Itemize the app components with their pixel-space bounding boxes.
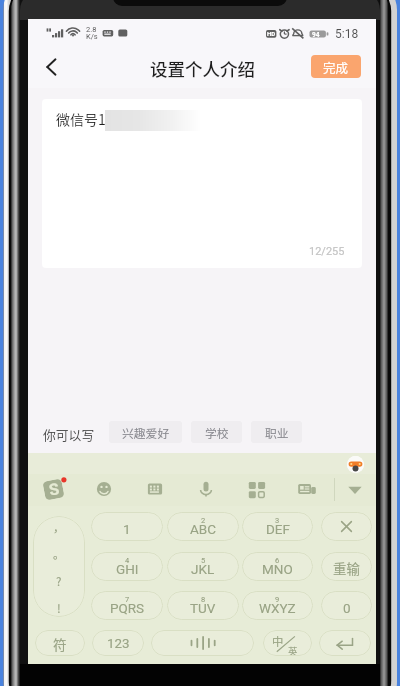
button[interactable]: Emoji — [347, 456, 364, 473]
staticText: DEF — [266, 521, 290, 537]
staticText: ? — [56, 573, 62, 590]
staticText: 学校 — [205, 424, 229, 441]
button[interactable]: 1 — [91, 512, 163, 541]
button[interactable]: Hide keyboard — [341, 475, 369, 503]
button[interactable]: 微信号1 — [42, 99, 362, 268]
staticText: 6 — [275, 556, 280, 565]
staticText: 9 — [275, 595, 280, 604]
button[interactable]: 5 — [167, 552, 239, 581]
staticText: 12/255 — [309, 245, 345, 258]
staticText: 5 — [201, 556, 206, 565]
button[interactable]: 兴趣爱好 — [109, 421, 182, 443]
staticText: 3 — [275, 516, 280, 525]
button[interactable]: 7 — [91, 591, 163, 620]
button[interactable]: Voice input — [151, 630, 254, 656]
staticText: 7 — [125, 595, 130, 604]
staticText: GHI — [116, 561, 139, 577]
button[interactable]: Back — [33, 48, 71, 86]
button[interactable]: Enter — [319, 630, 371, 656]
staticText: 。 — [53, 546, 65, 563]
staticText: K/s — [86, 32, 98, 41]
staticText: WXYZ — [259, 600, 296, 616]
button[interactable]: Clipboard — [293, 475, 321, 503]
staticText: 微信号1 — [56, 109, 106, 129]
staticText: 符 — [53, 634, 67, 654]
button[interactable]: Delete — [321, 512, 372, 541]
button[interactable]: 3 — [242, 512, 313, 541]
staticText: JKL — [191, 561, 215, 577]
button[interactable]: Punctuation — [33, 516, 85, 617]
staticText: 5:18 — [335, 27, 359, 41]
button[interactable]: 6 — [242, 552, 313, 581]
button[interactable]: Emoticons — [90, 475, 118, 503]
staticText: 8 — [201, 595, 206, 604]
button[interactable]: Input method settings — [39, 475, 67, 503]
staticText: PQRS — [110, 600, 145, 616]
button[interactable]: 重输 — [321, 552, 372, 581]
button[interactable]: Chinese English toggle — [263, 630, 312, 656]
staticText: 中 — [272, 633, 284, 650]
staticText: 完成 — [323, 58, 349, 76]
staticText: 4 — [125, 556, 130, 565]
button[interactable]: 完成 — [311, 55, 361, 78]
button[interactable]: 4 — [91, 552, 163, 581]
staticText: 英 — [288, 644, 298, 656]
button[interactable]: Keyboard layout — [141, 475, 169, 503]
button[interactable]: 9 — [242, 591, 313, 620]
button[interactable]: 123 — [92, 630, 144, 656]
staticText: MNO — [262, 561, 293, 577]
staticText: ， — [53, 519, 65, 536]
staticText: 1 — [123, 521, 131, 537]
button[interactable]: More tools — [243, 475, 271, 503]
staticText: 0 — [343, 600, 351, 616]
staticText: 94 — [312, 31, 320, 39]
button[interactable]: 符 — [35, 630, 85, 656]
button[interactable]: 0 — [321, 591, 372, 620]
staticText: 2.8 — [86, 25, 97, 34]
button[interactable]: 2 — [167, 512, 239, 541]
staticText: 123 — [107, 636, 130, 652]
staticText: S — [47, 479, 61, 500]
staticText: 重输 — [333, 558, 360, 577]
staticText: 职业 — [265, 424, 289, 441]
button[interactable]: 8 — [167, 591, 239, 620]
staticText: 2 — [201, 516, 206, 525]
staticText: TUV — [190, 600, 216, 616]
staticText: 设置个人介绍 — [150, 56, 255, 81]
staticText: 兴趣爱好 — [122, 424, 170, 441]
staticText: ! — [57, 600, 61, 617]
staticText: ABC — [190, 521, 217, 537]
staticText: 你可以写 — [43, 425, 95, 444]
button[interactable]: 学校 — [191, 421, 242, 443]
button[interactable]: Voice input — [192, 475, 220, 503]
staticText: HD — [267, 30, 276, 37]
button[interactable]: 职业 — [251, 421, 302, 443]
